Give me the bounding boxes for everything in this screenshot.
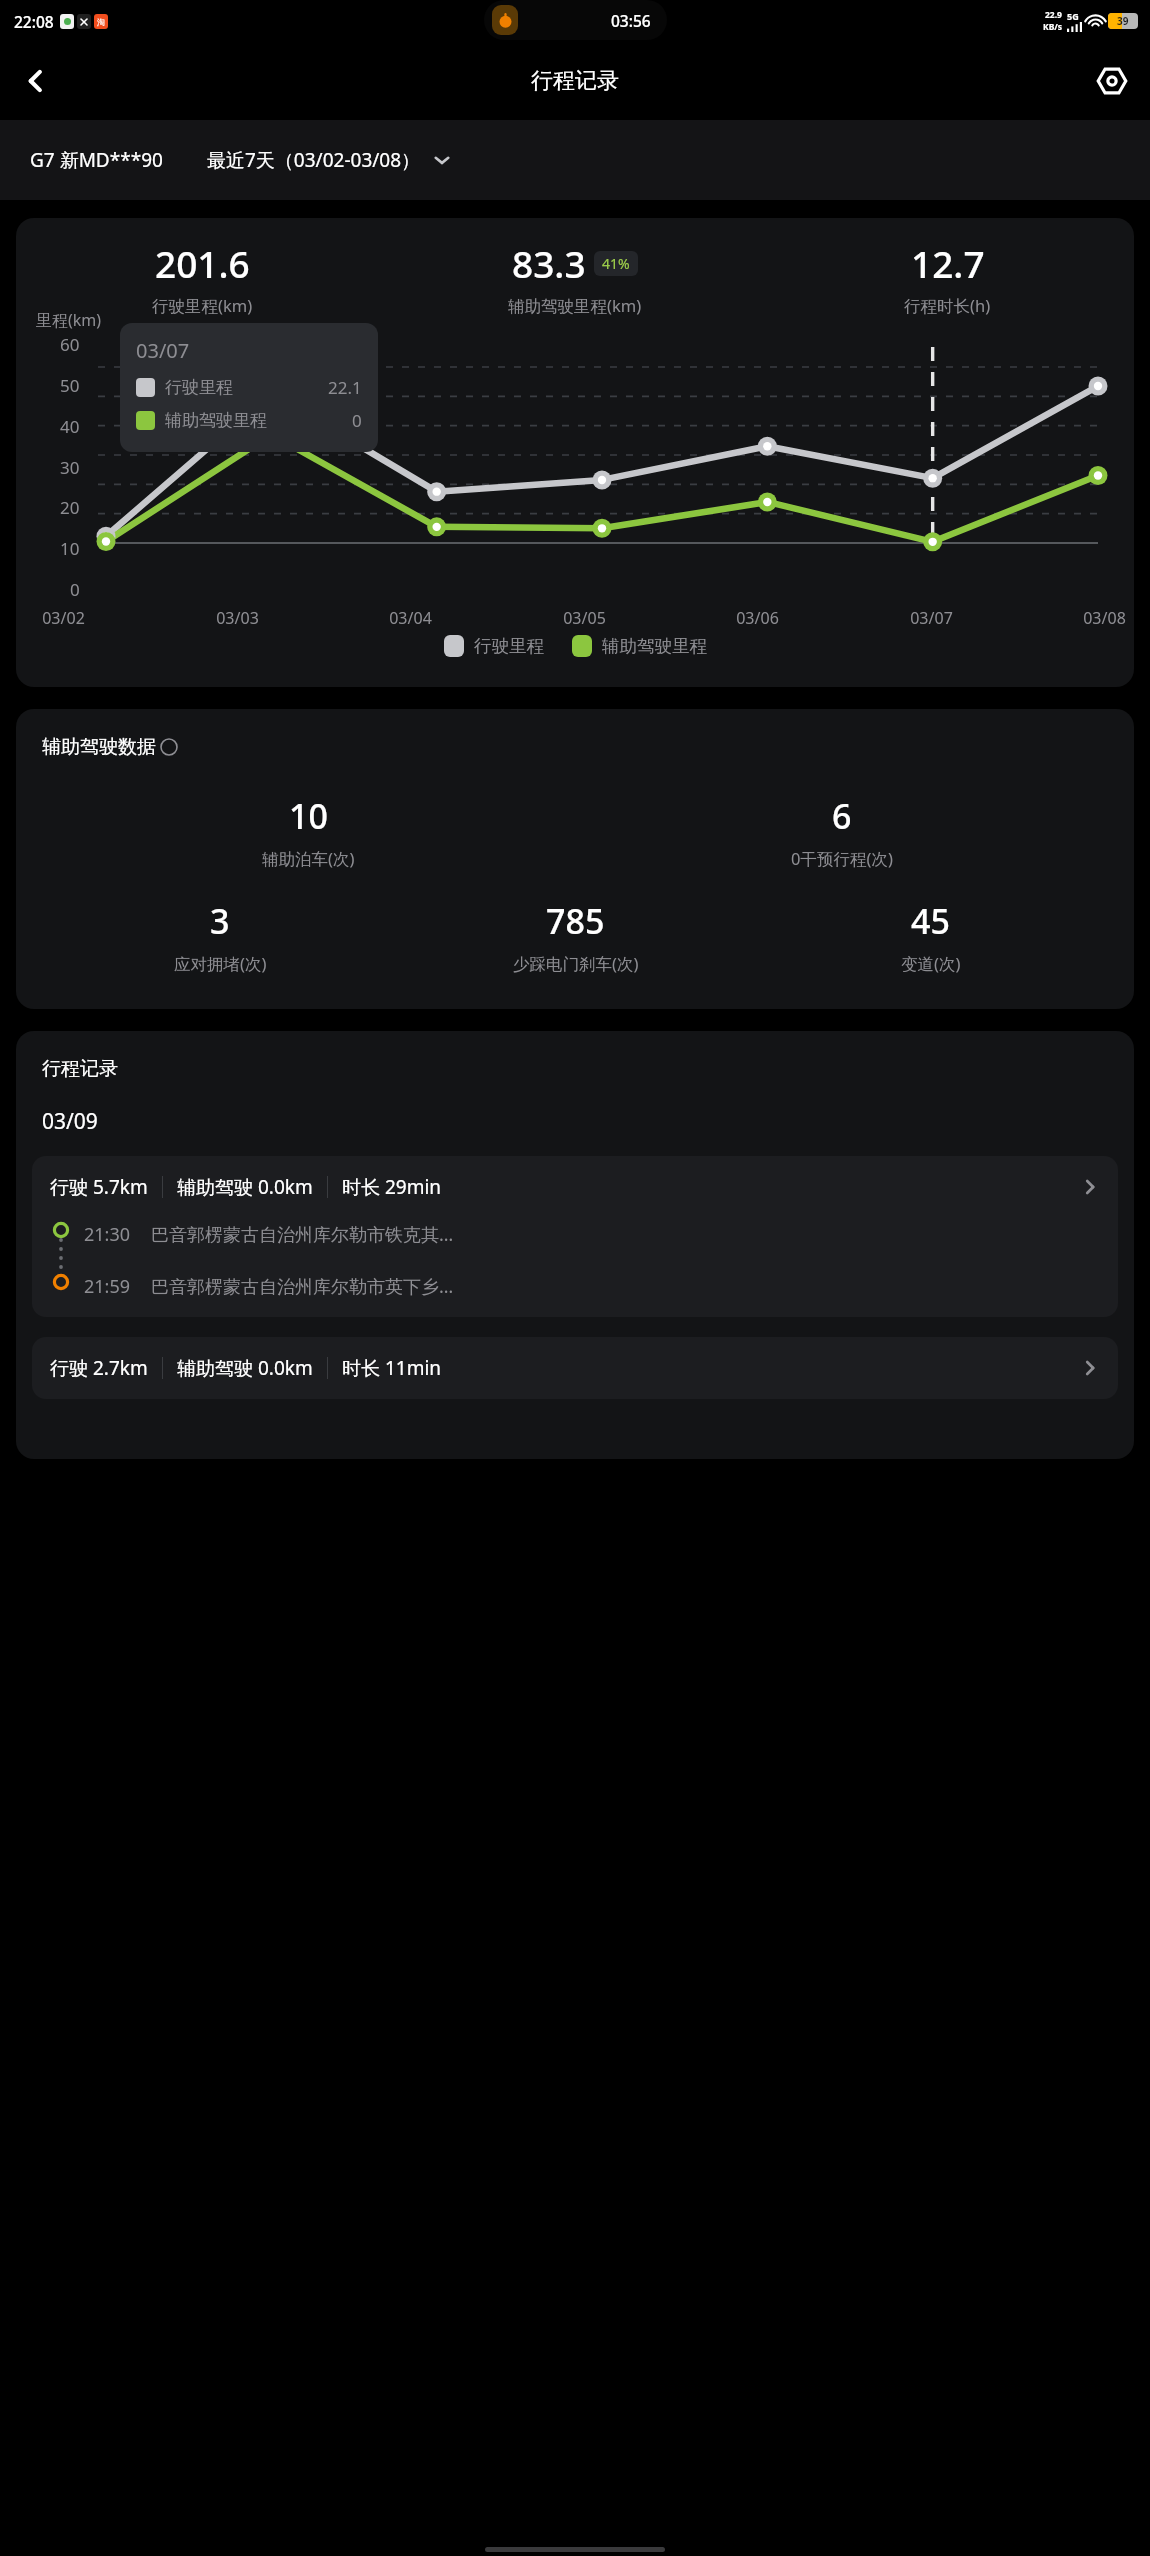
staticText: 辅助驾驶数据 [42, 735, 156, 759]
staticText: 40 [60, 415, 80, 438]
staticText: 行程时长(h) [904, 294, 991, 317]
staticText: 辅助驾驶里程 [602, 635, 707, 657]
staticText: 03/04 [389, 607, 432, 629]
staticText: 22:08 [14, 11, 54, 32]
staticText: 785 [546, 898, 605, 944]
staticText: 03/05 [563, 607, 606, 629]
staticText: 变道(次) [901, 952, 961, 975]
staticText: 45 [911, 898, 950, 944]
button[interactable]: 辅助驾驶里程 [572, 635, 707, 657]
staticText: 41% [602, 254, 630, 273]
staticText: 时长 11min [342, 1355, 442, 1381]
staticText: 83.3 [512, 238, 586, 288]
button[interactable]: 最近7天（03/02-03/08） [207, 147, 451, 173]
button[interactable]: Settings [1084, 53, 1140, 109]
staticText: 22.9 [1045, 9, 1062, 21]
staticText: 50 [60, 374, 80, 397]
staticText: KB/s [1043, 21, 1063, 33]
staticText: 辅助驾驶里程 [165, 410, 267, 431]
staticText: G7 新MD***90 [30, 147, 163, 173]
staticText: 03/06 [736, 607, 779, 629]
staticText: 行程记录 [531, 67, 619, 95]
staticText: 5G [1067, 10, 1079, 22]
staticText: 巴音郭楞蒙古自治州库尔勒市铁克其… [151, 1222, 454, 1247]
staticText: 行驶里程 [165, 377, 233, 398]
staticText: 巴音郭楞蒙古自治州库尔勒市英下乡… [151, 1274, 454, 1299]
button[interactable]: G7 新MD***90 [30, 147, 163, 173]
button[interactable]: 辅助驾驶数据 [42, 735, 178, 759]
staticText: 0干预行程(次) [791, 847, 893, 870]
staticText: 最近7天（03/02-03/08） [207, 147, 421, 173]
staticText: 淘 [97, 17, 105, 27]
button[interactable]: 行驶 2.7km [32, 1337, 1118, 1399]
staticText: 30 [60, 456, 80, 479]
staticText: 0 [352, 409, 362, 432]
staticText: 03/02 [42, 607, 85, 629]
staticText: 行驶里程 [474, 635, 544, 657]
staticText: 辅助驾驶里程(km) [508, 294, 642, 317]
staticText: 201.6 [155, 238, 250, 288]
staticText: 03/09 [42, 1107, 98, 1136]
staticText: 行程记录 [42, 1057, 118, 1081]
staticText: 6 [832, 793, 852, 839]
staticText: 应对拥堵(次) [174, 952, 267, 975]
button[interactable]: 行驶里程 [444, 635, 544, 657]
staticText: 行驶里程(km) [152, 294, 253, 317]
staticText: 里程(km) [36, 309, 102, 331]
button[interactable]: Back [8, 53, 64, 109]
staticText: 21:59 [84, 1274, 131, 1299]
staticText: 行驶 2.7km [50, 1355, 148, 1381]
staticText: 60 [60, 333, 80, 356]
staticText: 03/07 [136, 337, 190, 364]
staticText: 10 [289, 793, 328, 839]
staticText: 20 [60, 496, 80, 519]
staticText: 03/08 [1083, 607, 1126, 629]
staticText: 辅助驾驶 0.0km [177, 1174, 313, 1200]
staticText: 22.1 [328, 376, 362, 399]
staticText: 行驶 5.7km [50, 1174, 148, 1200]
staticText: 39 [1117, 14, 1129, 28]
staticText: 少踩电门刹车(次) [513, 952, 639, 975]
staticText: 03/07 [910, 607, 953, 629]
staticText: 0 [70, 578, 80, 601]
staticText: 10 [60, 537, 80, 560]
staticText: 21:30 [84, 1222, 131, 1247]
staticText: 辅助驾驶 0.0km [177, 1355, 313, 1381]
staticText: 时长 29min [342, 1174, 442, 1200]
staticText: 12.7 [911, 238, 985, 288]
staticText: 辅助泊车(次) [262, 847, 355, 870]
button[interactable]: 行驶 5.7km [32, 1156, 1118, 1317]
staticText: 3 [210, 898, 230, 944]
staticText: 03/03 [216, 607, 259, 629]
staticText: 03:56 [611, 10, 651, 31]
